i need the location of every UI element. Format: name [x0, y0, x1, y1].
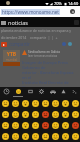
staticText: 70%	[54, 1, 62, 6]
button[interactable]: Emoji 19	[30, 120, 40, 131]
button[interactable]: Emoji 2	[20, 98, 30, 109]
button[interactable]: Emoji 26	[20, 131, 30, 142]
button[interactable]: Emoji 24	[0, 131, 10, 142]
staticText: leer terceras noticias	[28, 54, 58, 58]
button[interactable]: Smileys	[12, 87, 24, 98]
button[interactable]: Emoji 21	[50, 120, 60, 131]
button[interactable]: Emoji 8	[0, 109, 10, 120]
staticText: compartir	[9, 41, 30, 47]
staticText: mundial	[3, 58, 20, 62]
button[interactable]: Emoji 17	[10, 120, 20, 131]
button[interactable]: Emoji 20	[40, 120, 50, 131]
button[interactable]: Objects	[36, 87, 47, 98]
button[interactable]: Emoji 28	[40, 131, 50, 142]
button[interactable]: Emoji 12	[40, 109, 50, 120]
staticText: https://www.monoame.net	[2, 9, 59, 15]
staticText: exterior - Barcelona Espana en el	[22, 70, 79, 80]
button[interactable]: Emoji 27	[30, 131, 40, 142]
button[interactable]: Emoji 4	[40, 98, 50, 109]
button[interactable]: Emoji 15	[70, 109, 80, 120]
staticText: 14:50	[68, 1, 79, 6]
button[interactable]: Emoji 1	[10, 98, 20, 109]
button[interactable]: Emoji 31	[70, 131, 80, 142]
button[interactable]: Symbols	[69, 87, 80, 98]
button[interactable]: Emoji 7	[70, 98, 80, 109]
button[interactable]: https://www.monoame.net	[2, 9, 59, 15]
button[interactable]: Emoji 5	[50, 98, 60, 109]
button[interactable]: Emoji 13	[50, 109, 60, 120]
staticText: Sindicalismo en Galicia	[28, 50, 61, 54]
button[interactable]: Emoji 0	[0, 98, 10, 109]
button[interactable]: Emoji 29	[50, 131, 60, 142]
button[interactable]: Emoji 23	[70, 120, 80, 131]
button[interactable]: Emoji 6	[60, 98, 70, 109]
staticText: YTB	[3, 51, 20, 58]
button[interactable]: Twitter	[68, 42, 72, 46]
button[interactable]: Recent	[0, 87, 12, 98]
staticText: Instituto Real Decreto de Girona	[22, 80, 79, 87]
staticText: planeta endurance de noticias en espana …	[1, 28, 80, 33]
button[interactable]: Facebook	[62, 42, 66, 46]
button[interactable]: Emoji 3	[30, 98, 40, 109]
button[interactable]: YouTube	[1, 42, 7, 47]
button[interactable]: Emoji 18	[20, 120, 30, 131]
button[interactable]: Emoji 9	[10, 109, 20, 120]
button[interactable]: Emoji 14	[60, 109, 70, 120]
button[interactable]: Emoji 30	[60, 131, 70, 142]
button[interactable]: Emoji 22	[60, 120, 70, 131]
button[interactable]: Travel	[47, 87, 58, 98]
staticText: noticias	[8, 19, 28, 26]
staticText: Imagen de Europa Press Gobierno de	[22, 60, 79, 70]
button[interactable]: Page menu	[70, 9, 75, 14]
staticText: diciembre 2014 compartir | | +	[1, 35, 58, 40]
button[interactable]: Animals	[24, 87, 36, 98]
button[interactable]: Emoji 16	[0, 120, 10, 131]
button[interactable]: Emoji 11	[30, 109, 40, 120]
button[interactable]: Emoji 25	[10, 131, 20, 142]
button[interactable]: Emoji 10	[20, 109, 30, 120]
button[interactable]: Flags	[58, 87, 69, 98]
